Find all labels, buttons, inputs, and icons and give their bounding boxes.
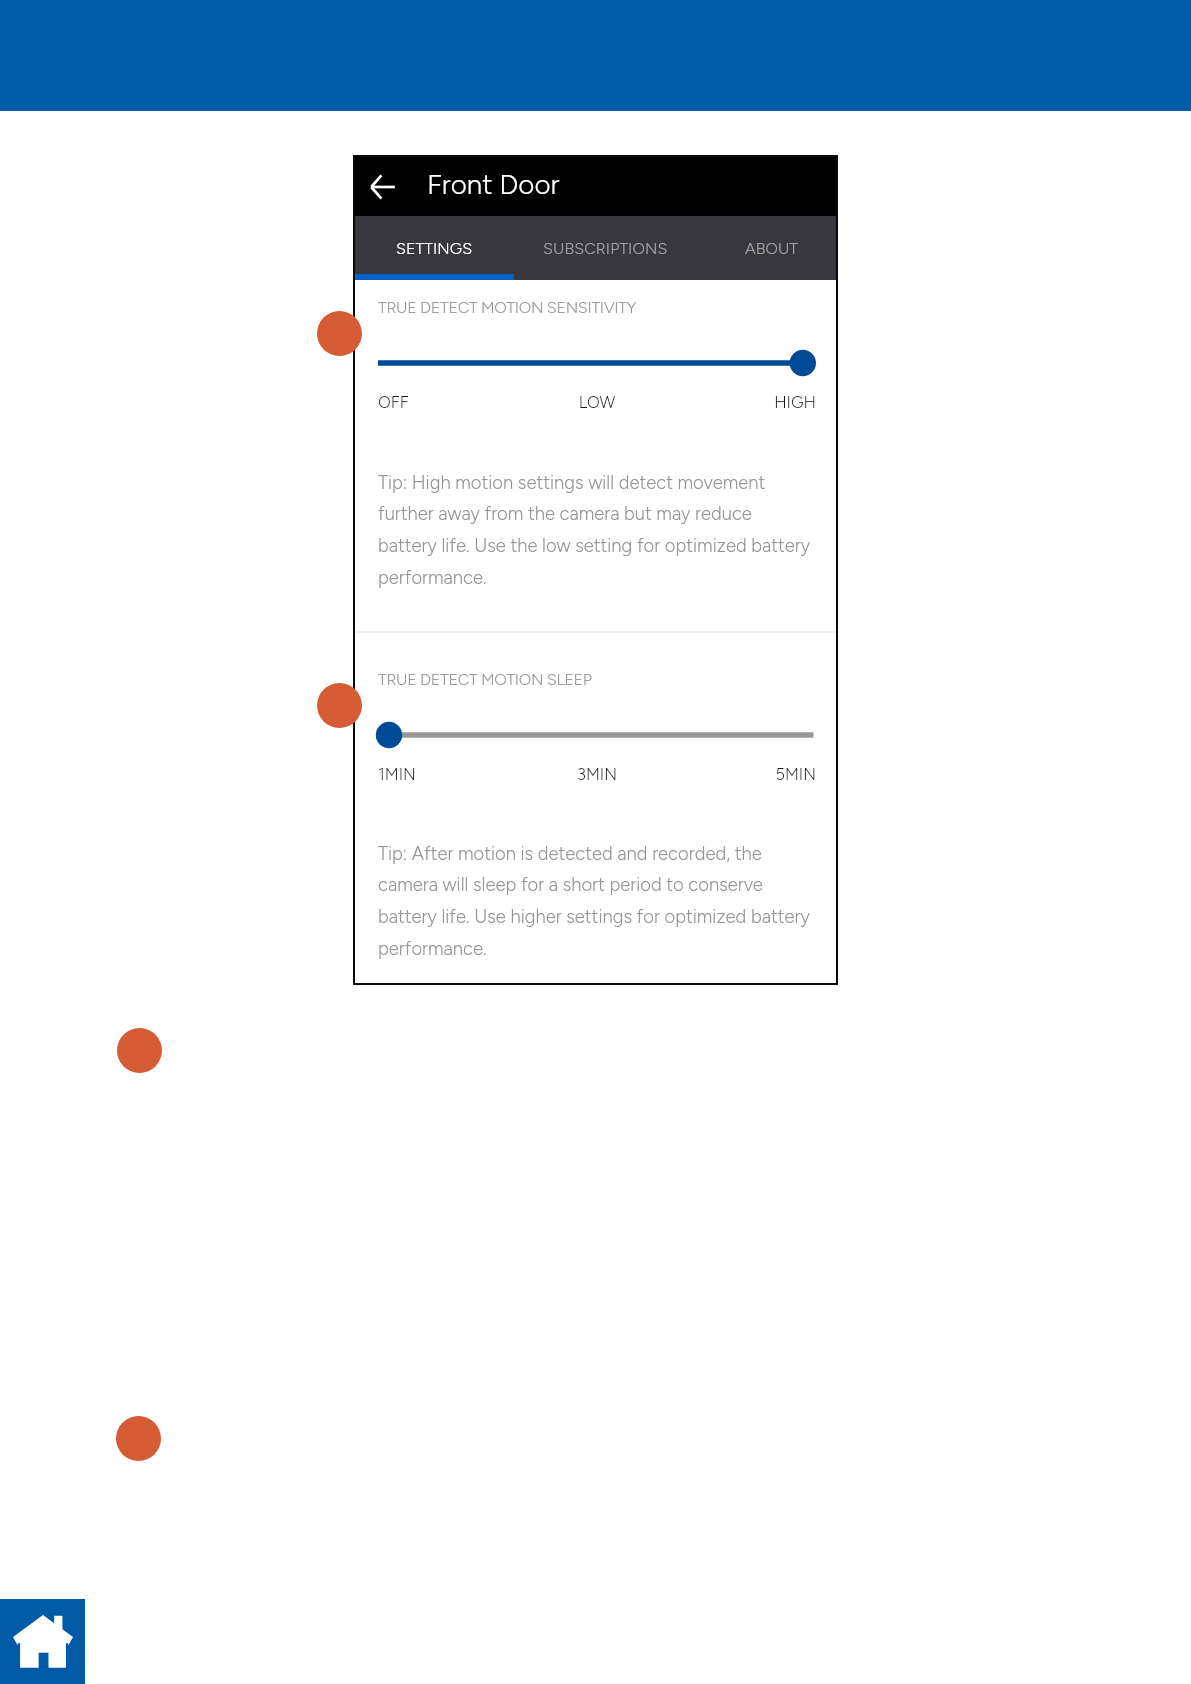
staticText: ABOUT [745, 239, 799, 258]
staticText: 1MIN [378, 764, 524, 784]
button[interactable]: TRUE DETECT MOTION SENSITIVITY [378, 350, 816, 376]
button[interactable]: Home [0, 1599, 85, 1684]
button[interactable]: SETTINGS [354, 216, 514, 280]
staticText: HIGH [670, 392, 816, 412]
staticText: OFF [378, 392, 524, 412]
button[interactable]: ABOUT [696, 216, 837, 280]
staticText: SUBSCRIPTIONS [543, 239, 668, 258]
staticText: LOW [524, 392, 670, 412]
staticText: Tip: After motion is detected and record… [378, 842, 811, 960]
button[interactable]: SUBSCRIPTIONS [514, 216, 696, 280]
staticText: Front Door [427, 168, 560, 201]
staticText: 3MIN [524, 764, 670, 784]
staticText: 5MIN [670, 764, 816, 784]
button[interactable]: TRUE DETECT MOTION SLEEP [378, 722, 816, 748]
staticText: TRUE DETECT MOTION SLEEP [378, 670, 592, 689]
staticText: SETTINGS [396, 239, 473, 258]
button[interactable]: Back [359, 163, 407, 211]
staticText: Tip: High motion settings will detect mo… [378, 471, 811, 589]
staticText: TRUE DETECT MOTION SENSITIVITY [378, 298, 636, 317]
